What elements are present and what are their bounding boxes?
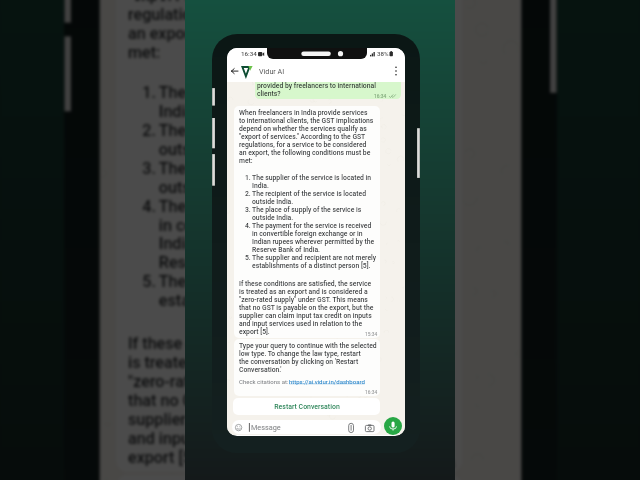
staticText: 4. (142, 197, 156, 216)
button[interactable]: Emoji (232, 420, 381, 434)
button[interactable]: https://ai.vidur.in/dashboard (289, 378, 365, 385)
button[interactable]: Camera (365, 424, 375, 432)
staticText: Restart Conversation (274, 403, 340, 411)
staticText: The supplier of the service is located i… (252, 174, 372, 190)
button[interactable]: Vidur AI (241, 60, 301, 81)
staticText: 2. (245, 190, 251, 198)
staticText: Message (251, 423, 281, 432)
button[interactable]: When freelancers in India provide servic… (234, 106, 380, 338)
staticText: When freelancers in India provide servic… (128, 0, 448, 62)
button[interactable]: provided by freelancers to international… (255, 82, 401, 99)
staticText: The supplier of the service is located i… (159, 84, 443, 121)
staticText: 38% (377, 50, 389, 57)
staticText: 3. (245, 206, 251, 214)
staticText: 1. (245, 174, 251, 182)
button[interactable]: Restart Conversation (233, 398, 380, 415)
button[interactable]: More options (391, 64, 401, 78)
staticText: The recipient of the service is located … (252, 190, 366, 206)
button[interactable]: Voice message (384, 417, 402, 435)
button[interactable]: Emoji (235, 424, 243, 432)
staticText: 1. (142, 84, 156, 103)
staticText: The supplier and recipient are not merel… (159, 273, 455, 311)
staticText: 15:34 (365, 331, 378, 337)
staticText: 15:34 (427, 456, 457, 470)
staticText: provided by freelancers to international… (257, 82, 376, 98)
staticText: When freelancers in India provide servic… (239, 109, 374, 165)
staticText: The payment for the service is received … (252, 222, 375, 254)
button[interactable]: Type your query to continue with the sel… (116, 475, 462, 480)
button[interactable]: When freelancers in India provide servic… (116, 0, 462, 472)
staticText: The payment for the service is received … (159, 197, 450, 273)
staticText: 3. (142, 159, 156, 178)
staticText: The place of supply of the service is ou… (159, 159, 419, 197)
button[interactable]: Attach (347, 423, 356, 432)
staticText: Vidur AI (259, 67, 285, 75)
staticText: The recipient of the service is located … (159, 121, 429, 159)
staticText: If these conditions are satisfied, the s… (239, 280, 374, 336)
staticText: The place of supply of the service is ou… (252, 206, 362, 222)
button[interactable]: Type your query to continue with the sel… (234, 339, 380, 396)
staticText: Type your query to continue with the sel… (239, 342, 377, 374)
staticText: The supplier and recipient are not merel… (252, 254, 377, 270)
staticText: 16:34 (374, 93, 387, 99)
staticText: 5. (142, 273, 156, 292)
staticText: 4. (245, 222, 251, 230)
staticText: 16:34 (365, 389, 378, 395)
staticText: 2. (142, 121, 156, 140)
button[interactable]: Back (229, 65, 242, 78)
staticText: If these conditions are satisfied, the s… (128, 335, 448, 467)
staticText: Check citations at: (239, 378, 290, 385)
staticText: 16:34 (241, 50, 257, 57)
staticText: 5. (245, 254, 251, 262)
